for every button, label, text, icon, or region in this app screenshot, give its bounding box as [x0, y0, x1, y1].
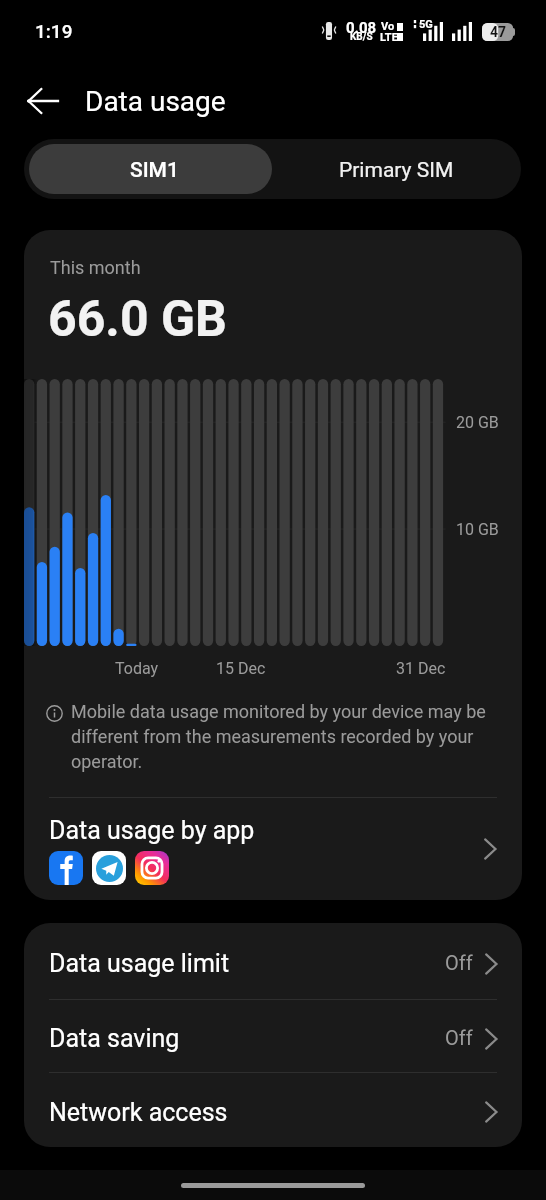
staticText: Data usage limit — [49, 949, 445, 978]
button[interactable]: Data saving — [24, 1000, 522, 1073]
staticText: Data usage by app — [49, 816, 255, 845]
staticText: Off — [445, 1026, 473, 1049]
staticText: Today — [115, 659, 159, 678]
button[interactable]: Back — [14, 73, 70, 129]
staticText: 20 GB — [456, 413, 499, 432]
staticText: 31 Dec — [396, 659, 446, 678]
staticText: Data usage — [85, 85, 226, 118]
staticText: Vo — [381, 20, 395, 33]
staticText: This month — [50, 257, 141, 278]
staticText: 66.0 GB — [48, 290, 228, 349]
staticText: Off — [445, 951, 473, 974]
button[interactable]: Primary SIM — [272, 139, 521, 199]
button[interactable]: Network access — [24, 1073, 522, 1147]
staticText: 10 GB — [456, 520, 499, 539]
staticText: Mobile data usage monitored by your devi… — [71, 701, 518, 772]
button[interactable]: SIM1 — [29, 144, 272, 194]
staticText: 1:19 — [35, 20, 73, 42]
staticText: 0.08 — [346, 19, 377, 37]
button[interactable]: Data usage limit — [24, 923, 522, 1000]
staticText: KB/S — [350, 31, 373, 43]
staticText: LTE — [380, 31, 398, 44]
staticText: SIM1 — [130, 158, 179, 183]
staticText: 15 Dec — [216, 659, 266, 678]
staticText: Data saving — [49, 1024, 445, 1053]
button[interactable]: Data usage by app — [24, 798, 522, 900]
staticText: 47 — [490, 24, 507, 40]
staticText: 5G — [419, 18, 433, 31]
staticText: Primary SIM — [339, 158, 454, 183]
staticText: Network access — [49, 1098, 478, 1127]
